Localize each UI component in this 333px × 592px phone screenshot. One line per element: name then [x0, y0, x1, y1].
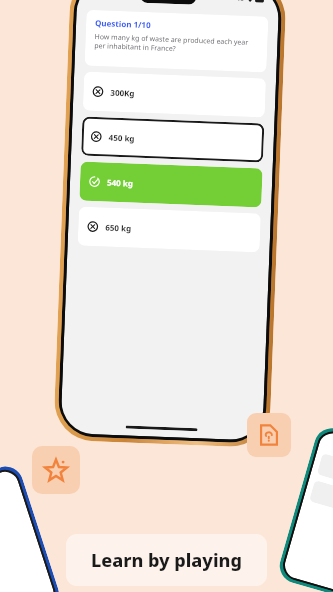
staticText: 650 kg: [105, 221, 131, 233]
staticText: Question 1/10: [95, 17, 151, 30]
button[interactable]: 650 kg: [78, 206, 261, 252]
staticText: Learn by playing: [91, 548, 242, 573]
button[interactable]: 450 kg: [81, 117, 264, 163]
staticText: 300Kg: [110, 87, 136, 99]
button[interactable]: 300Kg: [83, 72, 266, 118]
staticText: 450 kg: [108, 132, 135, 144]
staticText: 540 kg: [107, 177, 133, 189]
button[interactable]: 540 kg: [79, 161, 263, 207]
button[interactable]: Learn by playing: [66, 534, 267, 586]
button[interactable]: Favorites: [32, 446, 80, 494]
staticText: How many kg of waste are produced each y…: [94, 32, 259, 56]
staticText: 48: [236, 0, 245, 4]
button[interactable]: Help: [247, 413, 291, 457]
